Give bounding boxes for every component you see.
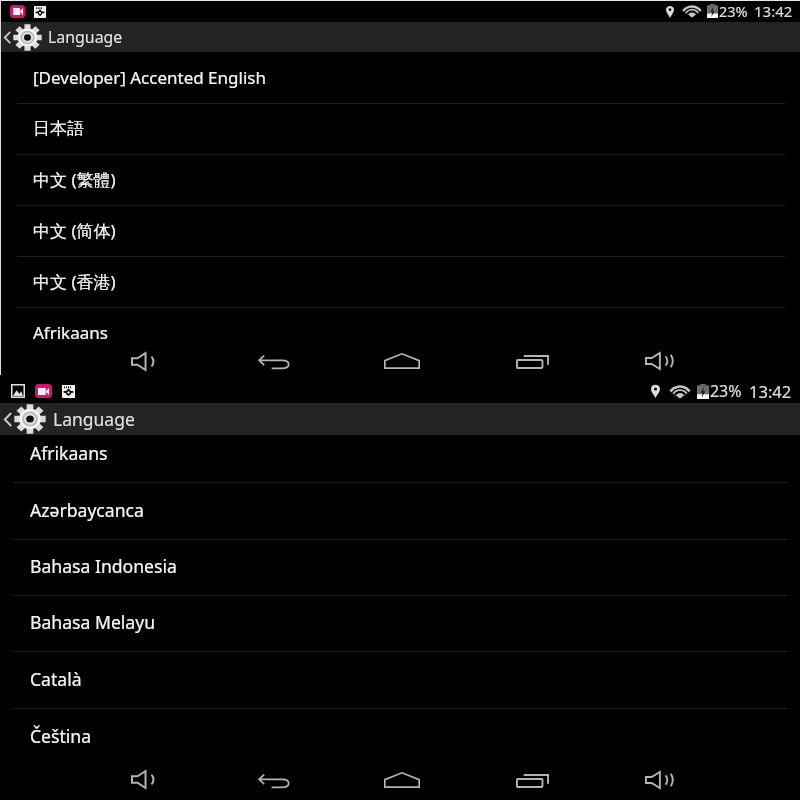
other: Back [4, 30, 11, 45]
button[interactable]: Home [337, 344, 467, 378]
button[interactable]: 日本語 [0, 104, 800, 155]
staticText: 中文 (繁體) [33, 168, 116, 191]
button[interactable]: Afrikaans [0, 435, 800, 483]
staticText: 中文 (简体) [33, 219, 116, 242]
button[interactable]: Home [337, 761, 467, 798]
staticText: Afrikaans [30, 441, 108, 465]
other: Back [4, 411, 12, 428]
staticText: 23% [719, 1, 748, 21]
staticText: [Developer] Accented English [33, 66, 266, 89]
button[interactable]: 中文 (香港) [0, 257, 800, 308]
button[interactable]: Back [208, 761, 337, 798]
staticText: Language [48, 26, 123, 48]
button[interactable]: Volume down [79, 761, 208, 798]
button[interactable]: Volume up [597, 761, 727, 798]
button[interactable]: Afrikaans [0, 308, 800, 359]
staticText: 23% [710, 380, 742, 402]
staticText: 日本語 [33, 118, 84, 139]
button[interactable]: Bahasa Melayu [0, 596, 800, 652]
button[interactable]: Bahasa Indonesia [0, 540, 800, 596]
staticText: Azərbaycanca [30, 498, 144, 522]
staticText: Català [30, 667, 82, 691]
button[interactable]: Català [0, 652, 800, 709]
button[interactable]: [Developer] Accented English [0, 53, 800, 104]
button[interactable]: Back [0, 22, 800, 52]
button[interactable]: 中文 (简体) [0, 206, 800, 257]
button[interactable]: Back [0, 403, 800, 435]
staticText: Bahasa Indonesia [30, 554, 177, 578]
staticText: 13:42 [754, 1, 793, 21]
button[interactable]: Back [208, 344, 337, 378]
staticText: Language [53, 407, 135, 431]
button[interactable]: Volume up [597, 344, 727, 378]
staticText: 中文 (香港) [33, 270, 116, 293]
button[interactable]: Recents [467, 344, 597, 378]
button[interactable]: Azərbaycanca [0, 483, 800, 540]
other: Settings [13, 24, 42, 51]
button[interactable]: Čeština [0, 709, 800, 766]
staticText: Čeština [30, 724, 92, 748]
button[interactable]: Volume down [79, 344, 208, 378]
other: Settings [14, 404, 46, 434]
staticText: Bahasa Melayu [30, 610, 156, 634]
staticText: Afrikaans [33, 321, 108, 344]
button[interactable]: Recents [467, 761, 597, 798]
button[interactable]: 中文 (繁體) [0, 155, 800, 206]
staticText: 13:42 [749, 380, 792, 402]
